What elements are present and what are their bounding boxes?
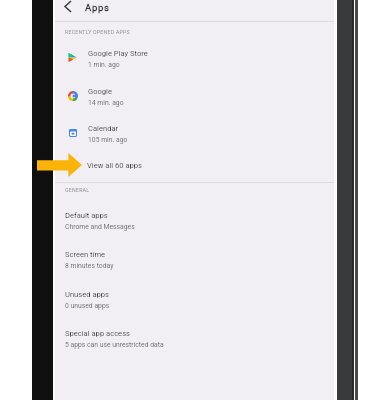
staticText: Screen time — [65, 250, 106, 259]
other: Callout arrow — [37, 153, 82, 177]
button[interactable]: View all 60 apps — [54, 152, 336, 178]
staticText: Special app access — [65, 329, 130, 338]
staticText: Google — [88, 87, 112, 96]
staticText: Calendar — [88, 124, 119, 133]
button[interactable]: Navigate up — [54, 0, 336, 16]
staticText: Chrome and Messages — [65, 223, 135, 231]
button[interactable]: Calendar — [54, 115, 336, 153]
staticText: RECENTLY OPENED APPS — [65, 29, 130, 35]
staticText: 0 unused apps — [65, 302, 110, 310]
staticText: View all 60 apps — [87, 161, 143, 170]
staticText: GENERAL — [65, 187, 90, 193]
button[interactable]: Screen time — [54, 240, 336, 279]
button[interactable]: Google — [54, 78, 336, 116]
button[interactable]: Google Play Store — [54, 40, 336, 78]
button[interactable]: Default apps — [54, 201, 336, 240]
staticText: Apps — [85, 2, 110, 13]
staticText: 105 min. ago — [88, 136, 128, 144]
staticText: 8 minutes today — [65, 262, 114, 270]
staticText: 14 min. ago — [88, 99, 124, 107]
button[interactable]: Special app access — [54, 319, 336, 358]
button[interactable]: Navigate up — [54, 0, 76, 16]
staticText: 1 min. ago — [88, 61, 120, 69]
staticText: Default apps — [65, 211, 108, 220]
staticText: Google Play Store — [88, 49, 148, 58]
staticText: Unused apps — [65, 290, 109, 299]
button[interactable]: Unused apps — [54, 280, 336, 319]
staticText: 5 apps can use unrestricted data — [65, 341, 164, 349]
